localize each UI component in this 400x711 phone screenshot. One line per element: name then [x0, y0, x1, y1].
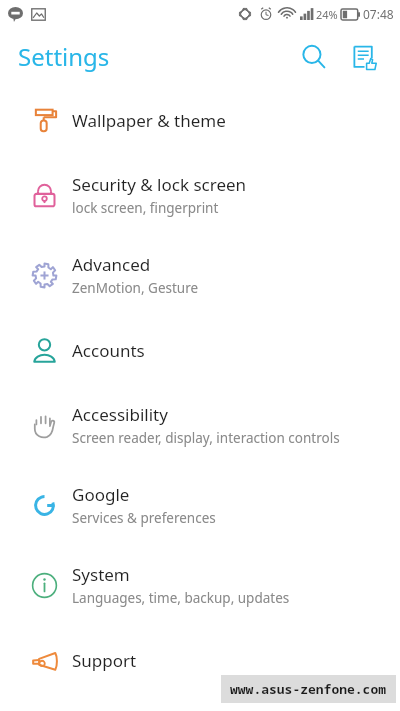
staticText: 07:48	[363, 6, 394, 22]
staticText: lock screen, fingerprint	[72, 199, 219, 217]
button[interactable]: Google	[0, 465, 400, 545]
staticText: Wallpaper & theme	[72, 109, 226, 132]
button[interactable]: Search	[292, 35, 336, 79]
staticText: Accessibility	[72, 403, 168, 426]
button[interactable]: Accounts	[0, 315, 400, 385]
button[interactable]: System	[0, 545, 400, 625]
staticText: Accounts	[72, 339, 145, 362]
staticText: Screen reader, display, interaction cont…	[72, 429, 340, 447]
button[interactable]: Accessibility	[0, 385, 400, 465]
staticText: 24%	[316, 7, 338, 22]
button[interactable]: Send feedback	[342, 35, 386, 79]
staticText: ZenMotion, Gesture	[72, 279, 199, 297]
staticText: Services & preferences	[72, 509, 216, 527]
staticText: Advanced	[72, 253, 151, 276]
button[interactable]: Security & lock screen	[0, 155, 400, 235]
staticText: Settings	[18, 40, 110, 73]
staticText: Languages, time, backup, updates	[72, 589, 290, 607]
staticText: System	[72, 563, 130, 586]
staticText: Security & lock screen	[72, 173, 247, 196]
staticText: Support	[72, 649, 137, 672]
button[interactable]: Advanced	[0, 235, 400, 315]
button[interactable]: Support	[0, 625, 400, 695]
staticText: www.asus-zenfone.com	[230, 680, 387, 698]
button[interactable]: Wallpaper & theme	[0, 85, 400, 155]
staticText: Google	[72, 483, 130, 506]
